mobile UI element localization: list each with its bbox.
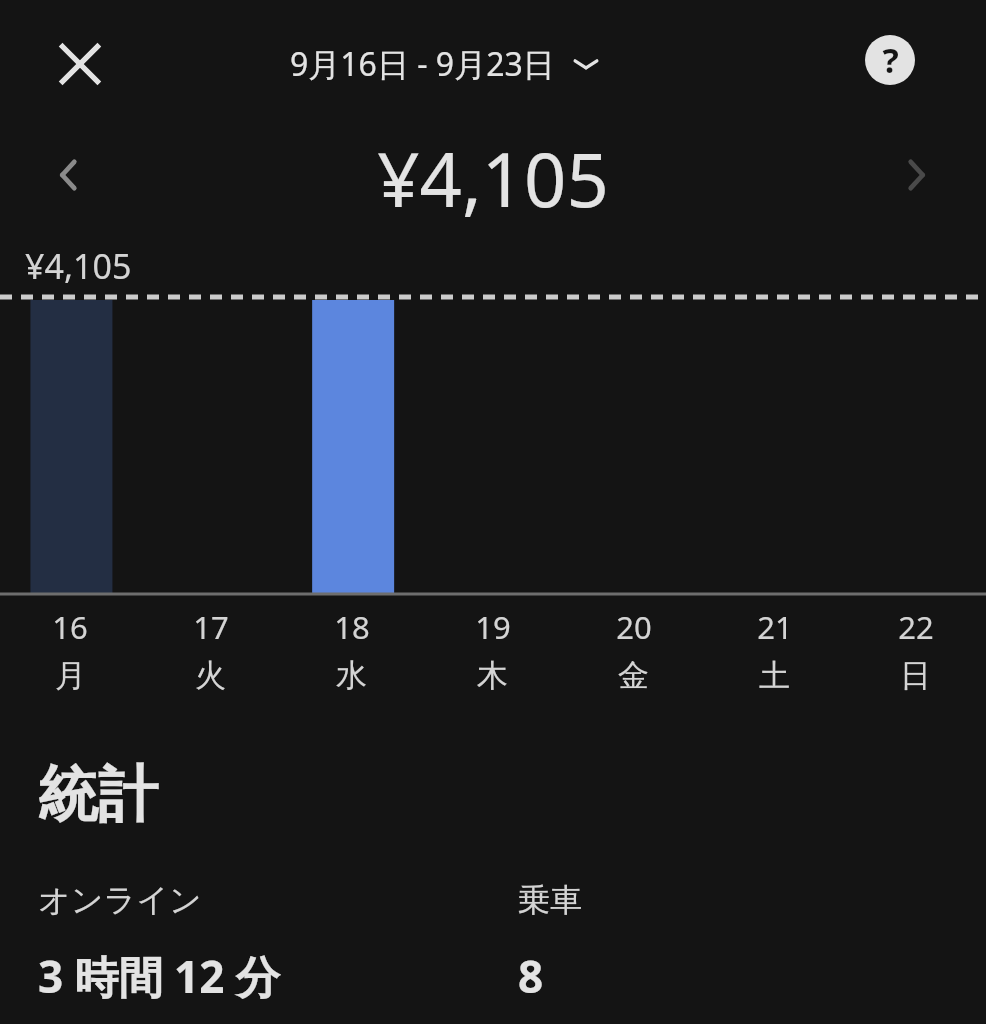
staticText: 18 xyxy=(334,606,370,648)
staticText: 3 時間 12 分 xyxy=(38,946,280,1006)
staticText: 乗車 xyxy=(518,880,582,920)
staticText: 20 xyxy=(616,606,652,648)
staticText: ¥4,105 xyxy=(377,128,609,224)
staticText: 17 xyxy=(193,606,229,648)
button[interactable]: 21 xyxy=(704,606,845,695)
staticText: 水 xyxy=(336,656,367,695)
staticText: 9月16日 - 9月23日 xyxy=(290,42,555,86)
button[interactable]: Close xyxy=(45,29,115,99)
staticText: 16 xyxy=(52,606,88,648)
staticText: ? xyxy=(882,37,899,83)
staticText: 日 xyxy=(900,656,931,695)
staticText: 8 xyxy=(518,946,544,1006)
button[interactable]: 19 xyxy=(422,606,563,695)
staticText: 月 xyxy=(55,656,86,695)
staticText: 21 xyxy=(757,606,793,648)
staticText: 金 xyxy=(618,656,649,695)
button[interactable]: 18 xyxy=(281,606,422,695)
button[interactable]: Help xyxy=(855,25,925,95)
staticText: 統計 xyxy=(38,757,158,833)
button[interactable]: 9月16日 - 9月23日 xyxy=(290,34,599,94)
button[interactable]: 17 xyxy=(140,606,281,695)
staticText: オンライン xyxy=(38,880,202,920)
button[interactable]: 22 xyxy=(845,606,986,695)
staticText: 19 xyxy=(475,606,511,648)
button[interactable]: 16 xyxy=(0,606,140,695)
staticText: 火 xyxy=(195,656,226,695)
button[interactable]: 20 xyxy=(563,606,704,695)
staticText: 木 xyxy=(477,656,508,695)
staticText: 22 xyxy=(898,606,934,648)
button[interactable]: Previous week xyxy=(38,145,98,205)
staticText: 土 xyxy=(759,656,790,695)
staticText: ¥4,105 xyxy=(25,243,132,289)
button[interactable]: Next week xyxy=(887,145,947,205)
